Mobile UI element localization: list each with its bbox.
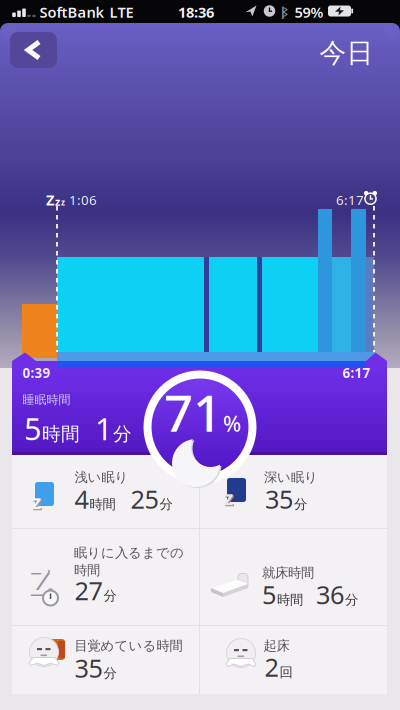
- staticText: 59%: [294, 2, 323, 22]
- staticText: 深い眠り: [264, 469, 318, 485]
- staticText: 起床: [263, 637, 289, 654]
- staticText: LTE: [109, 2, 133, 22]
- staticText: 27: [74, 573, 102, 607]
- staticText: 分: [103, 665, 116, 681]
- staticText: 分: [294, 496, 307, 512]
- staticText: 時間: [89, 496, 115, 512]
- staticText: 分: [113, 423, 132, 445]
- staticText: ᛒ: [281, 3, 288, 19]
- button[interactable]: Back: [10, 32, 57, 68]
- staticText: 5: [24, 408, 42, 449]
- staticText: z: [61, 197, 65, 208]
- staticText: z: [31, 488, 41, 515]
- staticText: 5: [262, 577, 276, 611]
- staticText: 36: [316, 577, 344, 611]
- staticText: 0:39: [22, 364, 50, 382]
- staticText: 分: [103, 587, 116, 604]
- staticText: Z: [28, 557, 49, 604]
- staticText: 時間: [42, 423, 80, 445]
- button[interactable]: 今日: [319, 37, 373, 69]
- staticText: 1:06: [66, 191, 97, 209]
- staticText: 時間: [74, 562, 100, 578]
- staticText: 6:17: [336, 191, 364, 209]
- staticText: SoftBank: [39, 2, 104, 22]
- staticText: 時間: [277, 591, 303, 608]
- staticText: 分: [159, 496, 172, 512]
- staticText: 6:17: [342, 364, 370, 382]
- staticText: 35: [74, 651, 102, 685]
- staticText: 25: [130, 482, 158, 516]
- staticText: z: [55, 194, 60, 209]
- staticText: 分: [345, 591, 358, 608]
- staticText: %: [223, 409, 241, 437]
- staticText: 71: [164, 378, 222, 446]
- staticText: 35: [265, 482, 293, 516]
- staticText: 1: [95, 408, 113, 449]
- staticText: 睡眠時間: [22, 392, 70, 407]
- staticText: 2: [264, 650, 278, 684]
- staticText: 4: [74, 482, 88, 516]
- staticText: z: [32, 489, 42, 516]
- staticText: 浅い眠り: [74, 469, 128, 485]
- staticText: z: [224, 485, 234, 512]
- staticText: 18:36: [178, 2, 214, 22]
- staticText: Z: [46, 190, 54, 209]
- staticText: 就床時間: [262, 564, 314, 581]
- staticText: z: [223, 484, 233, 511]
- staticText: 今日: [319, 37, 373, 69]
- staticText: 目覚めている時間: [74, 637, 182, 654]
- staticText: 回: [279, 664, 292, 680]
- staticText: 眠りに入るまでの: [74, 544, 184, 561]
- staticText: Z: [30, 558, 51, 606]
